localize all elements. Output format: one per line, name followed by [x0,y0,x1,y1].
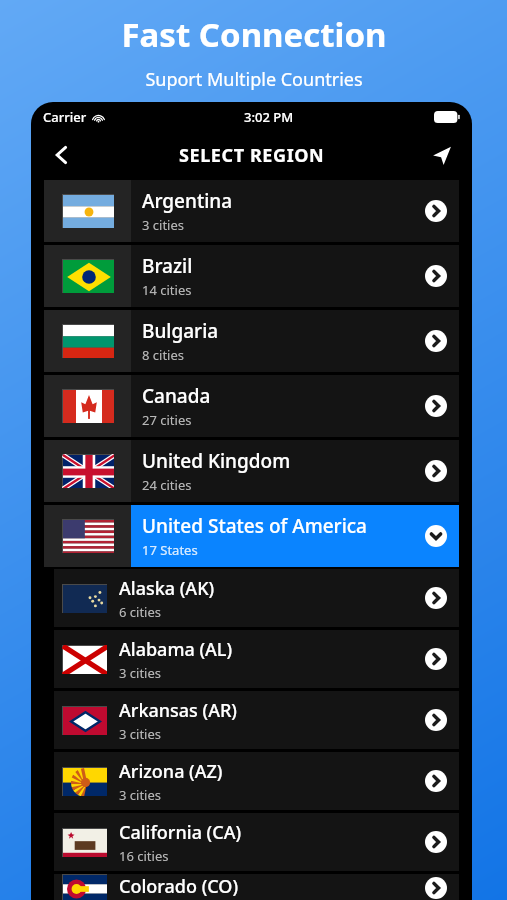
button[interactable]: Alaska (AK) [54,569,459,627]
staticText: Suport Multiple Countries [145,67,363,92]
button[interactable]: United States of America [44,505,459,567]
staticText: 27 cities [142,411,192,429]
staticText: United States of America [142,513,367,539]
button[interactable]: Alabama (AL) [54,630,459,688]
button[interactable]: Locate me [410,132,472,178]
staticText: Arkansas (AR) [119,698,237,723]
staticText: Argentina [142,188,233,214]
staticText: 14 cities [142,281,192,299]
staticText: Alabama (AL) [119,637,233,662]
staticText: California (CA) [119,820,242,845]
staticText: 3 cities [119,725,162,743]
staticText: United Kingdom [142,448,291,474]
staticText: Bulgaria [142,318,219,344]
staticText: 3:02 PM [244,108,294,126]
staticText: Alaska (AK) [119,576,215,601]
button[interactable]: Back [31,132,93,178]
button[interactable]: Brazil [44,245,459,307]
staticText: Brazil [142,253,193,279]
button[interactable]: Arkansas (AR) [54,691,459,749]
staticText: 16 cities [119,847,169,865]
staticText: Canada [142,383,211,409]
button[interactable]: Colorado (CO) [54,874,459,900]
button[interactable]: Bulgaria [44,310,459,372]
button[interactable]: Argentina [44,180,459,242]
staticText: SELECT REGION [179,143,325,168]
staticText: 3 cities [142,216,185,234]
staticText: Carrier [43,108,87,126]
staticText: 17 States [142,541,198,559]
button[interactable]: Arizona (AZ) [54,752,459,810]
button[interactable]: California (CA) [54,813,459,871]
staticText: 6 cities [119,603,162,621]
staticText: Arizona (AZ) [119,759,223,784]
staticText: 8 cities [142,346,185,364]
button[interactable]: United Kingdom [44,440,459,502]
staticText: Fast Connection [121,12,387,57]
staticText: 24 cities [142,476,192,494]
staticText: Colorado (CO) [119,874,239,899]
button[interactable]: Canada [44,375,459,437]
staticText: 3 cities [119,786,162,804]
staticText: 3 cities [119,664,162,682]
